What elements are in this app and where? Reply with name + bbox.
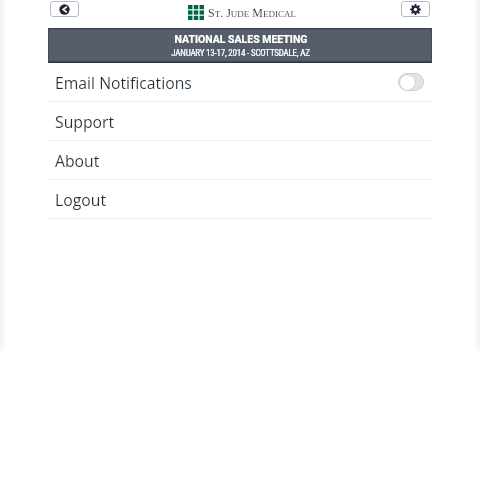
button[interactable]: About — [48, 141, 432, 180]
staticText: JANUARY 13-17, 2014 - SCOTTSDALE, AZ — [171, 48, 310, 59]
button[interactable]: Back — [50, 1, 79, 17]
staticText: Logout — [55, 189, 106, 210]
button[interactable]: Email Notifications — [48, 63, 432, 102]
staticText: Support — [55, 111, 115, 132]
staticText: About — [55, 150, 100, 171]
button[interactable]: Logout — [48, 180, 432, 219]
staticText: Email Notifications — [55, 72, 192, 93]
staticText: NATIONAL SALES MEETING — [174, 33, 308, 45]
button[interactable]: Settings — [401, 1, 430, 17]
staticText: ST. JUDE MEDICAL — [208, 6, 297, 19]
button[interactable]: Support — [48, 102, 432, 141]
